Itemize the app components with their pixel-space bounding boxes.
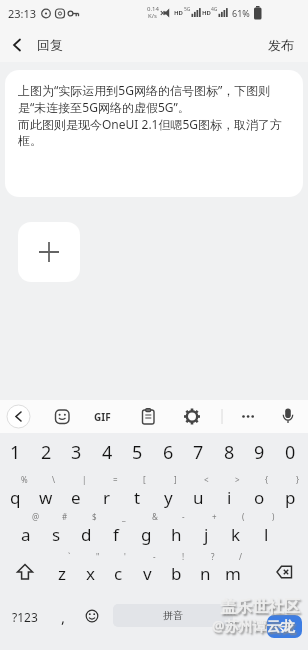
button[interactable]: w: [31, 484, 61, 510]
button[interactable]: 9: [244, 439, 274, 465]
button[interactable]: 3: [61, 439, 91, 465]
staticText: g: [141, 523, 152, 546]
staticText: ): [272, 511, 275, 522]
button[interactable]: 0: [275, 439, 305, 465]
button[interactable]: [18, 222, 80, 282]
button[interactable]: f: [101, 521, 131, 547]
staticText: -: [182, 511, 185, 522]
staticText: 1: [10, 440, 21, 465]
button[interactable]: r: [92, 484, 122, 510]
staticText: ': [124, 551, 126, 562]
button[interactable]: p: [275, 484, 305, 510]
button[interactable]: k: [221, 521, 251, 547]
staticText: \: [52, 474, 55, 485]
button[interactable]: d: [71, 521, 101, 547]
staticText: p: [285, 486, 296, 509]
button[interactable]: i: [214, 484, 244, 510]
staticText: b: [171, 562, 182, 585]
staticText: n: [200, 562, 211, 585]
button[interactable]: 6: [153, 439, 183, 465]
button[interactable]: 1: [0, 439, 30, 465]
staticText: 4: [102, 440, 113, 465]
staticText: 盖乐世社区: [220, 597, 300, 617]
button[interactable]: v: [132, 560, 162, 586]
staticText: 5G: [184, 6, 191, 13]
button[interactable]: q: [0, 484, 30, 510]
staticText: a: [21, 523, 31, 546]
button[interactable]: ?123: [5, 604, 45, 630]
staticText: ,: [61, 607, 66, 627]
staticText: s: [52, 523, 61, 546]
button[interactable]: y: [153, 484, 183, 510]
button[interactable]: 4: [92, 439, 122, 465]
staticText: <: [204, 474, 209, 485]
staticText: h: [171, 523, 182, 546]
staticText: &: [152, 511, 158, 522]
staticText: `: [68, 551, 71, 562]
button[interactable]: 发布: [268, 37, 294, 53]
staticText: /: [239, 551, 242, 562]
staticText: m: [225, 562, 241, 585]
staticText: 4G: [211, 6, 218, 13]
button[interactable]: GIF: [88, 400, 116, 433]
button[interactable]: u: [183, 484, 213, 510]
staticText: {: [265, 474, 269, 485]
button[interactable]: [0, 28, 34, 62]
staticText: [: [143, 474, 146, 485]
button[interactable]: b: [161, 560, 191, 586]
button[interactable]: 7: [183, 439, 213, 465]
staticText: 7: [193, 440, 204, 465]
button[interactable]: n: [190, 560, 220, 586]
staticText: _: [122, 511, 126, 522]
button[interactable]: s: [41, 521, 71, 547]
button[interactable]: l: [251, 521, 281, 547]
staticText: #: [62, 511, 68, 522]
staticText: 发布: [268, 37, 294, 53]
button[interactable]: e: [61, 484, 91, 510]
staticText: i: [227, 486, 232, 509]
staticText: =: [113, 474, 118, 485]
button[interactable]: a: [11, 521, 41, 547]
staticText: c: [114, 562, 123, 585]
staticText: (: [242, 511, 245, 522]
staticText: w: [39, 486, 53, 509]
staticText: u: [193, 486, 204, 509]
staticText: 6: [163, 440, 174, 465]
button[interactable]: h: [161, 521, 191, 547]
button[interactable]: 5: [122, 439, 152, 465]
button[interactable]: g: [131, 521, 161, 547]
staticText: GIF: [94, 410, 111, 424]
staticText: 23:13: [8, 6, 37, 21]
button[interactable]: 8: [214, 439, 244, 465]
staticText: %: [21, 474, 28, 485]
staticText: 2: [41, 440, 52, 465]
staticText: 0.14: [147, 5, 159, 13]
button[interactable]: x: [75, 560, 105, 586]
button[interactable]: 拼音: [113, 604, 233, 627]
staticText: K/s: [148, 12, 157, 20]
button[interactable]: 2: [31, 439, 61, 465]
button[interactable]: c: [103, 560, 133, 586]
staticText: 5: [132, 440, 143, 465]
staticText: 61%: [232, 7, 250, 19]
button[interactable]: t: [122, 484, 152, 510]
staticText: r: [103, 486, 111, 509]
staticText: ?: [211, 551, 215, 562]
staticText: ]: [174, 474, 177, 485]
button[interactable]: ,: [48, 604, 78, 630]
staticText: f: [113, 523, 119, 546]
staticText: @苏州谭云龙: [212, 616, 295, 635]
button[interactable]: m: [218, 560, 248, 586]
button[interactable]: [7, 405, 30, 428]
button[interactable]: o: [244, 484, 274, 510]
button[interactable]: j: [191, 521, 221, 547]
staticText: q: [10, 486, 21, 509]
button[interactable]: z: [47, 560, 77, 586]
staticText: 8: [224, 440, 235, 465]
staticText: z: [58, 562, 66, 585]
staticText: ?123: [12, 609, 38, 625]
staticText: l: [264, 523, 269, 546]
button[interactable]: [267, 615, 302, 638]
staticText: t: [134, 486, 141, 509]
staticText: 0: [285, 440, 296, 465]
